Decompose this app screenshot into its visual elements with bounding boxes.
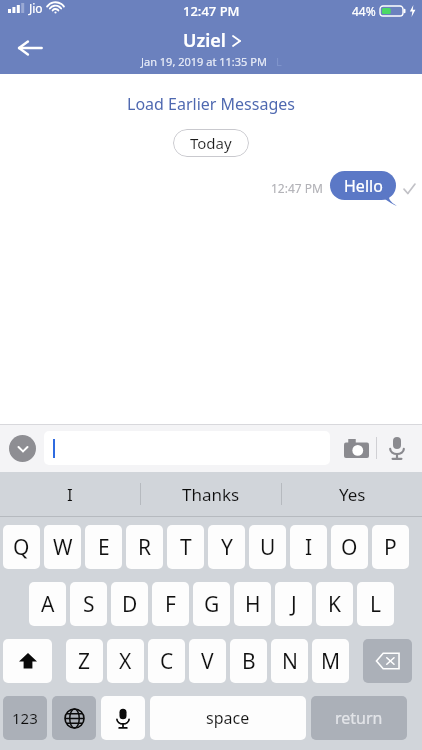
staticText: I	[305, 533, 313, 562]
button[interactable]: space	[150, 696, 306, 740]
staticText: N	[282, 647, 298, 676]
staticText: Q	[13, 533, 30, 562]
staticText: 123	[12, 708, 38, 728]
button[interactable]: Voice message	[381, 432, 413, 464]
button[interactable]: E	[85, 525, 122, 569]
staticText: K	[328, 590, 341, 619]
staticText: Jio	[29, 0, 43, 16]
button[interactable]: I	[290, 525, 327, 569]
staticText: H	[245, 590, 261, 619]
staticText: L	[276, 54, 282, 69]
staticText: E	[98, 533, 110, 562]
staticText: Z	[78, 647, 91, 676]
button[interactable]: N	[271, 639, 308, 683]
staticText: Yes	[339, 483, 366, 506]
button[interactable]: Today	[173, 129, 249, 157]
staticText: D	[122, 590, 138, 619]
button[interactable]: B	[230, 639, 267, 683]
staticText: M	[321, 647, 341, 676]
staticText: X	[119, 647, 132, 676]
staticText: Jan 19, 2019 at 11:35 PM	[141, 54, 267, 69]
button[interactable]: F	[152, 582, 189, 626]
button[interactable]: L	[357, 582, 394, 626]
button[interactable]: T	[167, 525, 204, 569]
button[interactable]: Dictate	[101, 696, 145, 740]
staticText: L	[370, 590, 382, 619]
staticText: P	[384, 533, 397, 562]
button[interactable]: U	[249, 525, 286, 569]
button[interactable]: W	[44, 525, 81, 569]
staticText: G	[204, 590, 220, 619]
button[interactable]	[44, 431, 330, 465]
staticText: U	[260, 533, 276, 562]
button[interactable]: Back	[8, 26, 52, 70]
staticText: A	[41, 590, 55, 619]
staticText: Hello	[344, 175, 383, 197]
staticText: return	[335, 707, 383, 729]
staticText: S	[83, 590, 95, 619]
staticText: V	[201, 647, 214, 676]
staticText: B	[242, 647, 256, 676]
button[interactable]: Change keyboard language	[52, 696, 96, 740]
button[interactable]: Y	[208, 525, 245, 569]
staticText: C	[160, 647, 174, 676]
staticText: 44%	[352, 3, 376, 19]
staticText: space	[206, 707, 250, 729]
staticText: Thanks	[182, 483, 240, 506]
staticText: Uziel	[183, 28, 226, 53]
button[interactable]: Backspace	[363, 639, 412, 683]
button[interactable]: Camera	[340, 432, 372, 464]
button[interactable]: J	[275, 582, 312, 626]
button[interactable]: Collapse	[9, 435, 36, 462]
button[interactable]: Thanks	[141, 472, 281, 516]
button[interactable]: H	[234, 582, 271, 626]
button[interactable]: O	[331, 525, 368, 569]
button[interactable]: I	[0, 472, 140, 516]
button[interactable]: G	[193, 582, 230, 626]
staticText: Y	[221, 533, 233, 562]
button[interactable]: Shift	[3, 639, 52, 683]
staticText: 12:47 PM	[271, 180, 323, 196]
button[interactable]: P	[372, 525, 409, 569]
button[interactable]: return	[311, 696, 407, 740]
button[interactable]: Load Earlier Messages	[117, 90, 305, 118]
staticText: Load Earlier Messages	[127, 93, 295, 115]
button[interactable]: M	[312, 639, 349, 683]
staticText: F	[165, 590, 176, 619]
button[interactable]: D	[111, 582, 148, 626]
button[interactable]: Hello	[330, 171, 396, 205]
button[interactable]: 123	[3, 696, 47, 740]
button[interactable]: Q	[3, 525, 40, 569]
staticText: W	[53, 533, 73, 562]
button[interactable]: C	[148, 639, 185, 683]
staticText: I	[67, 483, 73, 506]
button[interactable]: Yes	[282, 472, 422, 516]
staticText: O	[341, 533, 358, 562]
staticText: 12:47 PM	[183, 2, 240, 20]
button[interactable]: R	[126, 525, 163, 569]
staticText: T	[180, 533, 192, 562]
staticText: J	[291, 590, 297, 619]
staticText: Today	[190, 133, 232, 153]
button[interactable]: X	[107, 639, 144, 683]
staticText: R	[138, 533, 152, 562]
button[interactable]: S	[70, 582, 107, 626]
button[interactable]: V	[189, 639, 226, 683]
button[interactable]: Uziel	[141, 28, 282, 69]
button[interactable]: Z	[66, 639, 103, 683]
button[interactable]: A	[29, 582, 66, 626]
button[interactable]: K	[316, 582, 353, 626]
